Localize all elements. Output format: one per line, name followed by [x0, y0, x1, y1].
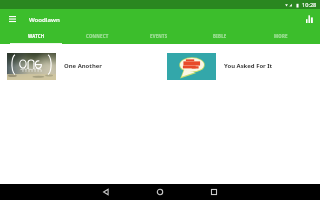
staticText: One Another: [64, 62, 102, 70]
button[interactable]: Statistics: [301, 11, 317, 27]
button[interactable]: Recent apps: [194, 184, 234, 200]
staticText: CONNECT: [86, 33, 109, 39]
staticText: MORE: [274, 33, 288, 39]
button[interactable]: Navigation menu: [4, 11, 20, 27]
staticText: Woodlawn: [29, 15, 60, 23]
button[interactable]: WATCH: [6, 28, 67, 44]
button[interactable]: Back: [86, 184, 126, 200]
button[interactable]: MORE: [250, 28, 311, 44]
staticText: WATCH: [28, 33, 45, 39]
staticText: EVENTS: [150, 33, 168, 39]
staticText: You Asked For It: [224, 62, 273, 70]
button[interactable]: EVENTS: [128, 28, 189, 44]
staticText: 10:28: [302, 1, 317, 9]
button[interactable]: CONNECT: [67, 28, 128, 44]
button[interactable]: You Asked For It: [160, 44, 320, 88]
staticText: BIBLE: [213, 33, 227, 39]
button[interactable]: One Another: [0, 44, 160, 88]
button[interactable]: Home: [140, 184, 180, 200]
button[interactable]: BIBLE: [189, 28, 250, 44]
